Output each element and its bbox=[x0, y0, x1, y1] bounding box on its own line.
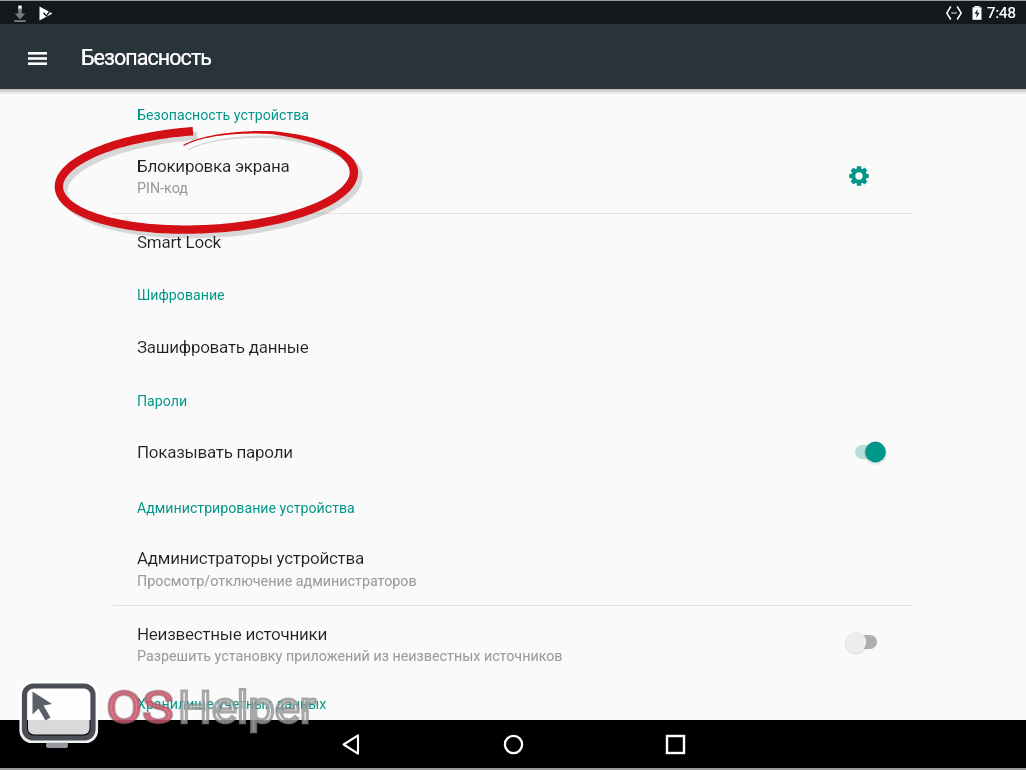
button[interactable]: Recents bbox=[651, 720, 699, 768]
button[interactable]: Settings bbox=[836, 153, 882, 199]
staticText: Неизвестные источники bbox=[137, 624, 328, 644]
staticText: Безопасность bbox=[81, 45, 212, 70]
staticText: Просмотр/отключение администраторов bbox=[137, 573, 417, 590]
staticText: Smart Lock bbox=[137, 232, 221, 252]
staticText: OS bbox=[106, 681, 174, 734]
button[interactable]: Smart Lock bbox=[2, 215, 1024, 267]
button[interactable]: Администраторы устройства bbox=[2, 529, 1024, 606]
button[interactable]: Блокировка экрана bbox=[2, 137, 1024, 214]
button[interactable]: Показывать пароли bbox=[2, 427, 1024, 479]
staticText: 7:48 bbox=[987, 4, 1016, 22]
staticText: Администраторы устройства bbox=[137, 548, 364, 568]
staticText: Безопасность устройства bbox=[137, 107, 310, 124]
staticText: Пароли bbox=[137, 393, 188, 410]
staticText: OS bbox=[106, 681, 174, 734]
staticText: Зашифровать данные bbox=[137, 337, 309, 357]
staticText: Шифрование bbox=[137, 287, 225, 304]
staticText: Показывать пароли bbox=[137, 442, 293, 462]
staticText: Блокировка экрана bbox=[137, 156, 290, 176]
staticText: Хранилище учетных данных bbox=[137, 696, 327, 713]
button[interactable]: Back bbox=[327, 720, 375, 768]
button[interactable]: Unknown sources toggle bbox=[836, 620, 882, 664]
staticText: Администрирование устройства bbox=[137, 500, 355, 517]
staticText: Разрешить установку приложений из неизве… bbox=[137, 648, 563, 665]
button[interactable]: Menu bbox=[19, 40, 55, 76]
staticText: PIN-код bbox=[137, 180, 188, 197]
button[interactable]: Show passwords toggle bbox=[845, 430, 891, 474]
button[interactable]: Зашифровать данные bbox=[2, 321, 1024, 373]
staticText: Helper bbox=[178, 681, 317, 734]
button[interactable]: Home bbox=[489, 720, 537, 768]
button[interactable]: Неизвестные источники bbox=[2, 607, 1024, 684]
staticText: Helper bbox=[178, 681, 317, 734]
